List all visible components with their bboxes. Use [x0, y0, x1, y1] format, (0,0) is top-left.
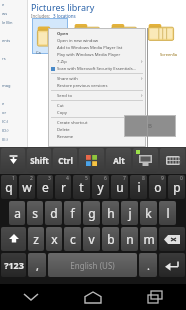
button[interactable]: z	[28, 227, 44, 251]
button[interactable]: .	[139, 253, 157, 277]
staticText: Create shortcut	[57, 120, 88, 126]
button[interactable]: j	[121, 201, 138, 225]
button[interactable]: g	[83, 201, 100, 225]
button[interactable]: ,	[28, 253, 46, 277]
button[interactable]: 7-Zip	[48, 58, 146, 65]
button[interactable]: Hide keyboard	[0, 284, 62, 310]
staticText: m	[143, 231, 155, 247]
button[interactable]: e	[37, 175, 53, 199]
button[interactable]: q	[1, 175, 17, 199]
button[interactable]: Rename	[48, 133, 146, 140]
button[interactable]: Cut	[48, 102, 146, 109]
button[interactable]: key	[1, 227, 26, 251]
staticText: Share with	[57, 76, 78, 82]
button[interactable]: y	[92, 175, 109, 199]
button[interactable]: Shift	[27, 148, 51, 173]
staticText: c	[70, 231, 76, 247]
staticText: 7-Zip	[57, 59, 67, 65]
staticText: Ca	[36, 50, 41, 55]
button[interactable]: a	[9, 201, 25, 225]
staticText: x	[51, 231, 58, 247]
button[interactable]: x	[46, 227, 62, 251]
staticText: Send to	[57, 93, 72, 99]
button[interactable]: Open	[48, 30, 146, 37]
button[interactable]: Share with	[48, 75, 146, 82]
staticText: Open in new window	[57, 38, 99, 44]
button[interactable]: key	[1, 148, 25, 173]
button[interactable]: Delete	[48, 126, 146, 133]
button[interactable]: n	[121, 227, 138, 251]
staticText: a	[14, 205, 21, 221]
staticText: q	[5, 179, 13, 195]
staticText: 6	[104, 175, 107, 182]
button[interactable]: c	[64, 227, 81, 251]
staticText: v	[88, 231, 95, 247]
button[interactable]: Open in new window	[48, 37, 146, 44]
button[interactable]: o	[149, 175, 166, 199]
staticText: j	[128, 205, 132, 221]
staticText: z	[33, 231, 39, 247]
button[interactable]: Alt	[106, 148, 131, 173]
button[interactable]: Restore previous versions	[48, 82, 146, 89]
button[interactable]: ?123	[1, 253, 26, 277]
staticText: Cut	[57, 103, 64, 109]
button[interactable]: i	[130, 175, 147, 199]
button[interactable]: b	[102, 227, 119, 251]
button[interactable]: s	[27, 201, 43, 225]
button[interactable]: p	[168, 175, 185, 199]
staticText: ?123	[4, 259, 24, 271]
staticText: o	[154, 179, 162, 195]
staticText: Scan with Microsoft Security Essentials.…	[57, 66, 137, 72]
staticText: 0	[180, 175, 183, 182]
button[interactable]: k	[140, 201, 157, 225]
button[interactable]: v	[83, 227, 100, 251]
button[interactable]: Recent apps	[124, 284, 186, 310]
staticText: n	[126, 231, 134, 247]
button[interactable]: d	[45, 201, 62, 225]
staticText: k	[145, 205, 152, 221]
button[interactable]: key	[159, 253, 185, 277]
button[interactable]: Add to Windows Media Player list	[48, 44, 146, 51]
staticText: 7	[123, 175, 126, 182]
button[interactable]: key	[79, 148, 104, 173]
button[interactable]: Create shortcut	[48, 119, 146, 126]
button[interactable]: Play with Windows Media Player	[48, 51, 146, 58]
button[interactable]: key	[160, 148, 185, 173]
button[interactable]: key	[133, 148, 158, 173]
staticText: or	[2, 110, 7, 115]
button[interactable]: u	[111, 175, 128, 199]
button[interactable]: key	[159, 227, 185, 251]
staticText: g	[88, 205, 96, 221]
staticText: e	[42, 179, 49, 195]
button[interactable]: f	[64, 201, 81, 225]
staticText: y	[97, 179, 104, 195]
staticText: t	[79, 179, 84, 195]
staticText: 2	[30, 175, 33, 182]
staticText: l	[166, 205, 170, 221]
staticText: le Bin	[2, 20, 13, 25]
button[interactable]: l	[159, 201, 176, 225]
staticText: b	[107, 231, 115, 247]
button[interactable]: h	[102, 201, 119, 225]
staticText: (C:)	[2, 119, 8, 124]
staticText: ›	[141, 58, 143, 65]
button[interactable]: English (US)	[48, 253, 137, 277]
button[interactable]: t	[73, 175, 90, 199]
button[interactable]: Send to	[48, 92, 146, 99]
staticText: (D:)	[2, 128, 9, 133]
button[interactable]: Ctrl	[53, 148, 77, 173]
button[interactable]: Copy	[48, 109, 146, 116]
staticText: e	[2, 101, 5, 106]
button[interactable]: w	[19, 175, 35, 199]
staticText: B	[148, 122, 152, 130]
staticText: Includes:	[31, 13, 51, 19]
button[interactable]: m	[140, 227, 157, 251]
staticText: ws	[2, 11, 8, 16]
staticText: 3 locations	[53, 13, 76, 19]
button[interactable]: Scan with Microsoft Security Essentials.…	[48, 65, 146, 72]
button[interactable]: r	[55, 175, 71, 199]
staticText: ,	[36, 258, 39, 273]
staticText: Add to Windows Media Player list	[57, 45, 123, 51]
staticText: Shift	[30, 155, 49, 166]
button[interactable]: Home	[62, 284, 124, 310]
